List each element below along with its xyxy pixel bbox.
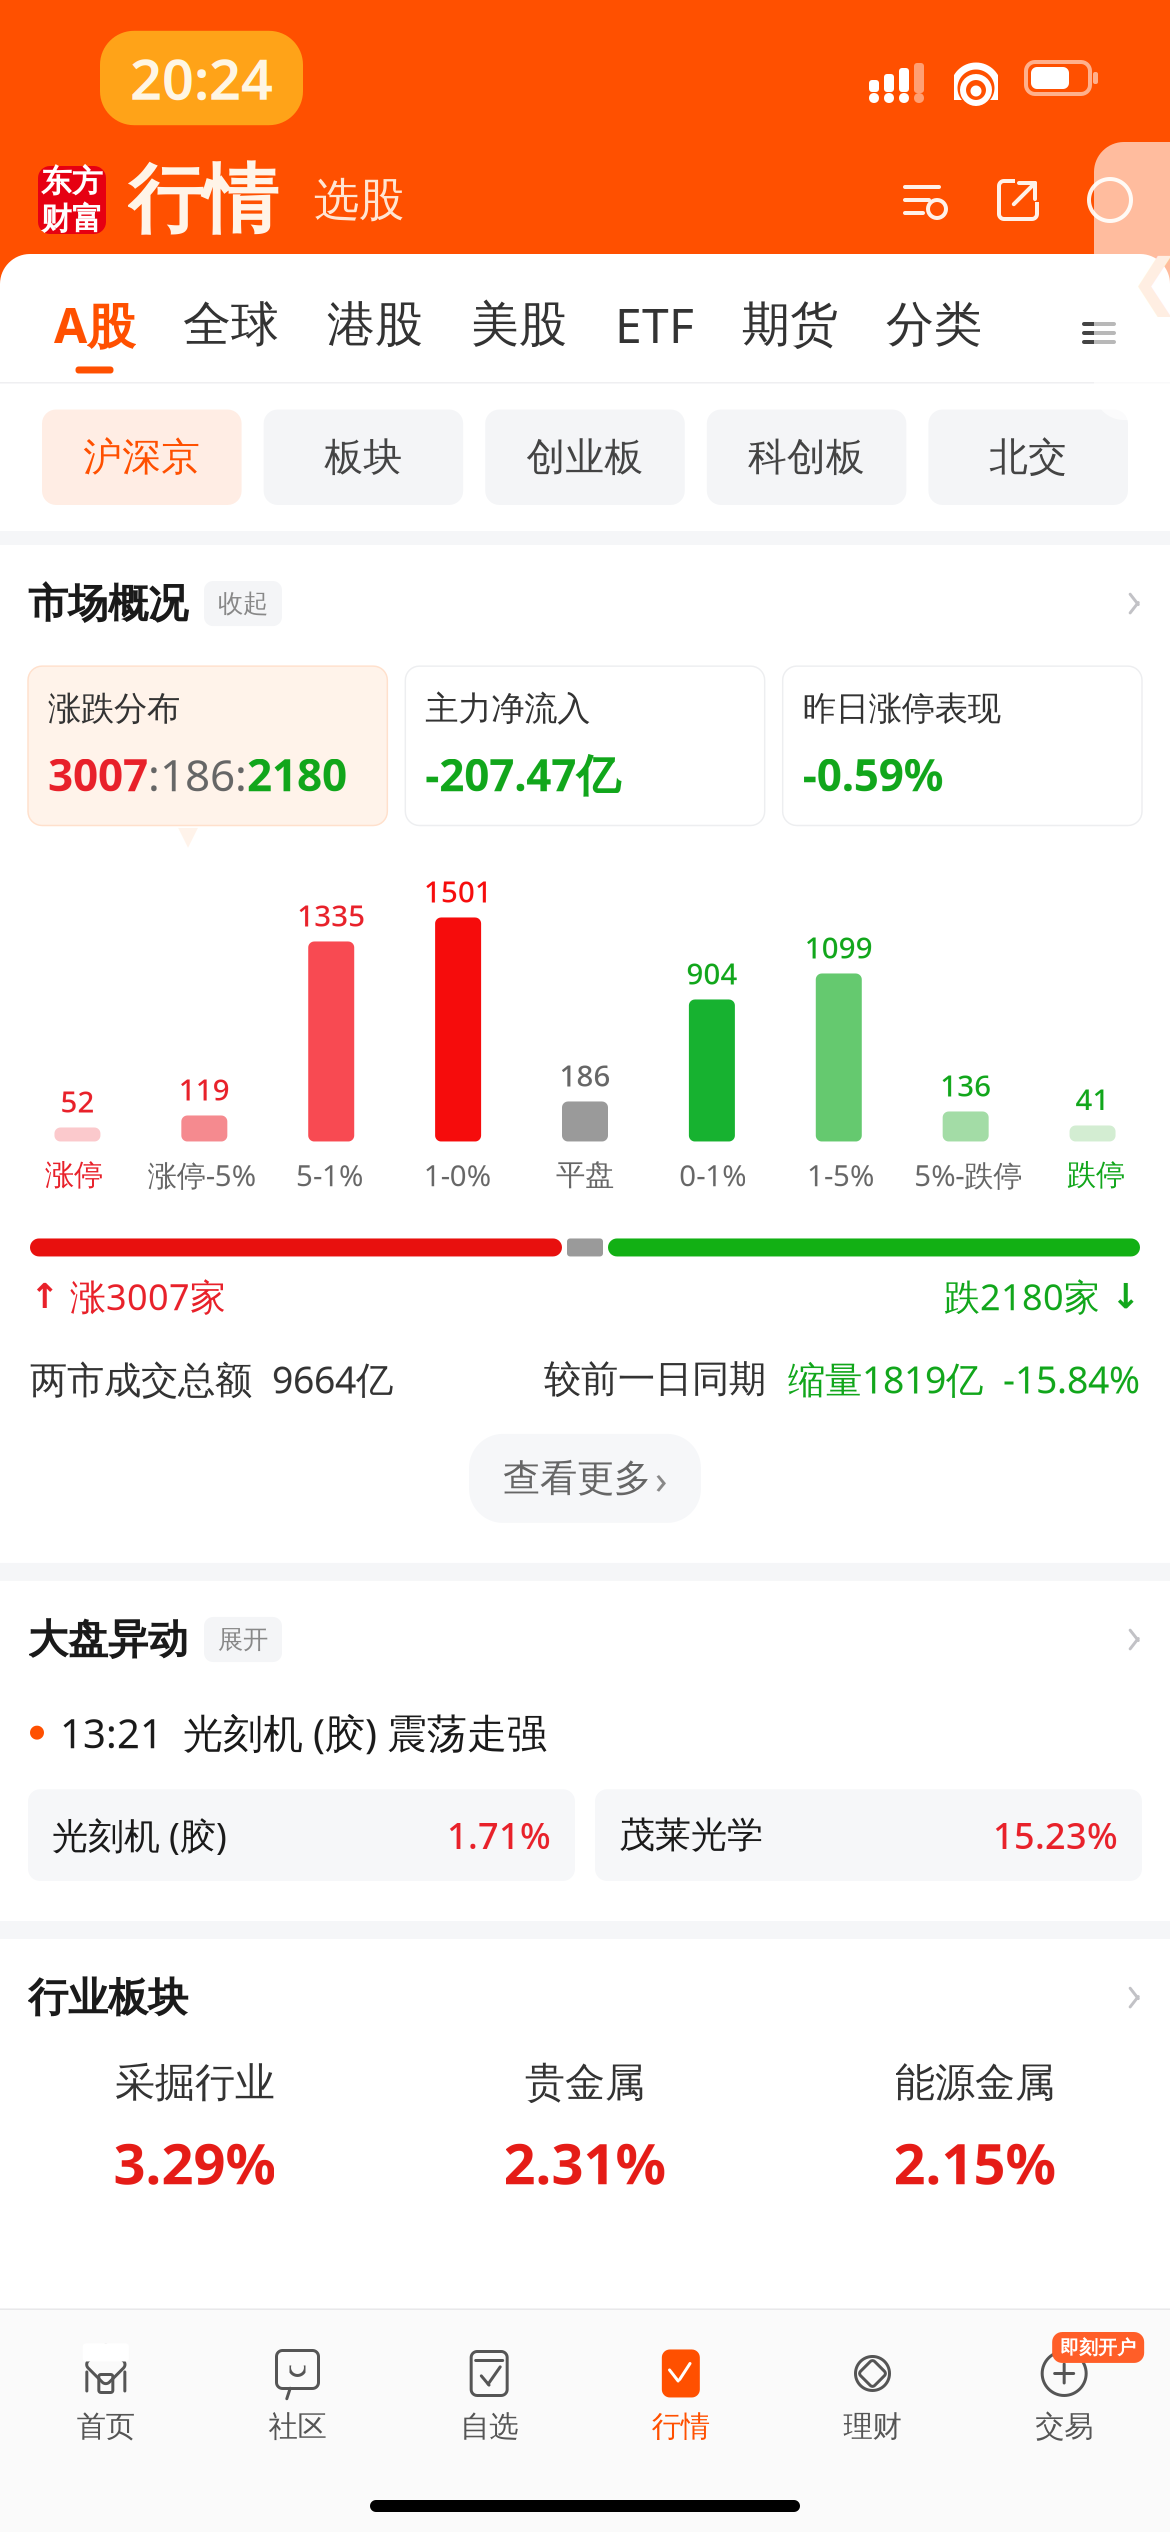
staticText: 港股 — [327, 295, 423, 354]
button[interactable]: 展开侧边栏 — [1060, 142, 1170, 420]
staticText: 5-1% — [296, 1155, 363, 1194]
button[interactable]: 即刻开户 — [968, 2347, 1160, 2444]
staticText: 186 — [559, 1055, 610, 1094]
staticText: 收起 — [218, 588, 268, 619]
staticText: 行情 — [652, 2408, 710, 2444]
button[interactable]: 大盘异动 — [0, 1581, 1170, 1664]
button[interactable]: 行情 — [585, 2347, 777, 2444]
staticText: 茂莱光学 — [619, 1813, 763, 1857]
button[interactable]: 筛选设置 — [898, 174, 950, 226]
staticText: A股 — [54, 292, 135, 356]
button[interactable]: 首页 — [10, 2347, 202, 2444]
staticText: 904 — [686, 953, 737, 992]
staticText: 财富 — [41, 200, 103, 238]
staticText: ↑ — [30, 1277, 59, 1316]
button[interactable]: 选股 — [304, 164, 414, 236]
staticText: 5%-跌停 — [914, 1155, 1022, 1194]
staticText: 41 — [1076, 1079, 1110, 1118]
staticText: 20:24 — [130, 41, 273, 115]
staticText: 较前一日同期 — [544, 1356, 788, 1402]
staticText: 2180 — [247, 745, 347, 803]
staticText: 3.29% — [113, 2125, 276, 2200]
button[interactable]: 板块 — [264, 409, 463, 505]
staticText: 大盘异动 — [28, 1615, 188, 1664]
button[interactable]: 美股 — [447, 295, 591, 371]
button[interactable]: 社区 — [202, 2347, 393, 2444]
staticText: 涨停-5% — [148, 1155, 256, 1194]
staticText: 分类 — [886, 295, 982, 354]
staticText: 理财 — [843, 2408, 901, 2444]
staticText: ↓ — [1111, 1277, 1140, 1316]
button[interactable]: 自选 — [393, 2347, 585, 2444]
staticText: 缩量1819亿 -15.84% — [788, 1354, 1140, 1404]
staticText: 全球 — [183, 295, 279, 354]
staticText: 科创板 — [748, 433, 865, 481]
staticText: 1-5% — [807, 1155, 874, 1194]
staticText: 15.23% — [993, 1811, 1118, 1859]
staticText: 跌停 — [1067, 1157, 1125, 1193]
button[interactable]: 采掘行业 — [0, 2058, 390, 2200]
staticText: ETF — [615, 293, 694, 356]
staticText: 东方 — [41, 162, 103, 200]
button[interactable]: 查看更多 — [469, 1434, 701, 1523]
staticText: 涨3007家 — [59, 1272, 226, 1320]
staticText: 光刻机 (胶) — [52, 1811, 227, 1859]
button[interactable]: 全球 — [159, 295, 303, 371]
staticText: 行业板块 — [28, 1973, 188, 2022]
staticText: 1.71% — [447, 1811, 551, 1859]
button[interactable]: 行业板块 — [0, 1939, 1170, 2022]
staticText: 自选 — [460, 2408, 518, 2444]
staticText: 2.31% — [503, 2125, 666, 2200]
staticText: 板块 — [324, 433, 402, 481]
staticText: 交易 — [1035, 2408, 1093, 2444]
staticText: :186: — [148, 745, 247, 803]
button[interactable]: 市场概况 — [0, 545, 1170, 638]
staticText: 展开 — [218, 1624, 268, 1655]
staticText: 社区 — [268, 2408, 326, 2444]
button[interactable]: 科创板 — [707, 409, 906, 505]
button[interactable]: 沪深京 — [42, 409, 242, 505]
staticText: -207.47亿 — [425, 745, 620, 803]
button[interactable]: A股 — [30, 292, 159, 373]
staticText: 查看更多 — [503, 1455, 651, 1501]
staticText: 平盘 — [556, 1157, 614, 1193]
button[interactable]: 港股 — [303, 295, 447, 371]
staticText: 首页 — [77, 2408, 135, 2444]
staticText: 创业板 — [526, 433, 643, 481]
button[interactable]: 能源金属 — [780, 2058, 1170, 2200]
staticText: 采掘行业 — [115, 2058, 275, 2107]
staticText: 贵金属 — [525, 2058, 645, 2107]
button[interactable]: 分类 — [862, 295, 1006, 371]
button[interactable]: ETF — [591, 293, 718, 373]
staticText: ❮ — [1129, 246, 1170, 316]
staticText: 2.15% — [893, 2125, 1056, 2200]
button[interactable]: 茂莱光学 — [595, 1789, 1142, 1881]
staticText: 52 — [60, 1081, 94, 1120]
button[interactable]: 搜索 — [1084, 174, 1136, 226]
button[interactable]: 创业板 — [485, 409, 685, 505]
staticText: 1501 — [424, 871, 492, 910]
staticText: 两市成交总额 9664亿 — [30, 1354, 393, 1404]
staticText: 北交 — [989, 433, 1067, 481]
staticText: › — [655, 1452, 667, 1505]
staticText: 选股 — [314, 172, 404, 228]
button[interactable]: 分享 — [992, 174, 1044, 226]
button[interactable]: 理财 — [777, 2347, 968, 2444]
staticText: 1335 — [297, 895, 365, 934]
staticText: 1099 — [805, 927, 873, 966]
button[interactable]: 光刻机 (胶) — [28, 1789, 575, 1881]
staticText: -0.59% — [803, 745, 944, 803]
button[interactable]: 期货 — [718, 295, 862, 371]
staticText: 沪深京 — [83, 433, 200, 481]
staticText: 行情 — [128, 154, 278, 246]
staticText: 期货 — [742, 295, 838, 354]
staticText: 跌2180家 — [944, 1272, 1111, 1320]
staticText: 美股 — [471, 295, 567, 354]
button[interactable]: 贵金属 — [390, 2058, 780, 2200]
staticText: 119 — [179, 1069, 230, 1108]
staticText: 能源金属 — [895, 2058, 1055, 2107]
button[interactable]: 北交 — [928, 409, 1128, 505]
staticText: 主力净流入 — [425, 688, 590, 729]
staticText: 涨跌分布 — [48, 688, 180, 729]
staticText: 136 — [940, 1065, 991, 1104]
